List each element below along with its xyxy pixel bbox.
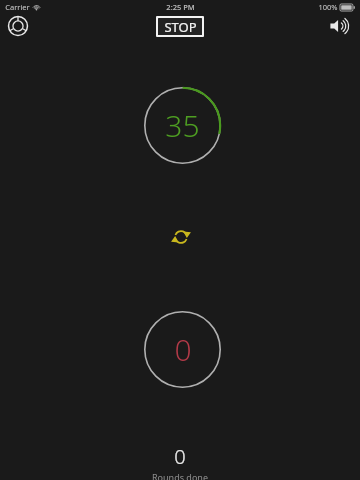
button[interactable]: STOP	[158, 18, 202, 35]
button[interactable]: Repeat	[172, 228, 190, 246]
staticText: Carrier	[5, 2, 30, 12]
button[interactable]: 0	[0, 443, 360, 480]
staticText: 0	[174, 329, 192, 370]
staticText: 0	[174, 443, 186, 470]
staticText: 35	[165, 105, 200, 146]
button[interactable]: Settings	[7, 15, 29, 37]
staticText: Rounds done	[152, 471, 208, 480]
button[interactable]: Sound	[328, 14, 352, 38]
staticText: 100%	[318, 2, 338, 12]
staticText: 2:25 PM	[166, 2, 195, 12]
button[interactable]: 0	[144, 311, 221, 388]
staticText: STOP	[164, 18, 197, 35]
button[interactable]: 35	[144, 87, 221, 164]
